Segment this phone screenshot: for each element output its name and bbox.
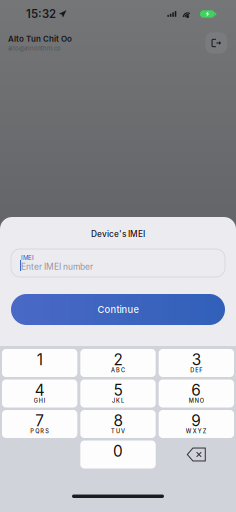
button[interactable]: Continue xyxy=(11,294,225,325)
button[interactable]: 5 xyxy=(80,379,156,407)
staticText: WXYZ xyxy=(186,428,207,435)
staticText: JKL xyxy=(112,397,124,404)
staticText: 6 xyxy=(191,381,201,399)
staticText: alto@innorithm.co xyxy=(8,45,61,52)
staticText: 7 xyxy=(35,411,44,430)
staticText: 9 xyxy=(191,411,201,430)
staticText: GHI xyxy=(34,397,46,404)
staticText: DEF xyxy=(190,367,202,374)
button[interactable]: 1 xyxy=(2,349,77,377)
button[interactable]: 8 xyxy=(80,410,156,438)
button[interactable]: Delete xyxy=(159,440,234,468)
staticText: 2 xyxy=(113,350,122,369)
staticText: 5 xyxy=(113,381,122,399)
button[interactable]: 6 xyxy=(159,379,234,407)
staticText: Alto Tun Chit Oo xyxy=(8,34,72,44)
staticText: 8 xyxy=(113,411,122,430)
staticText: 4 xyxy=(35,381,45,399)
staticText: Continue xyxy=(97,304,138,315)
button[interactable]: 3 xyxy=(159,349,234,377)
button[interactable]: 9 xyxy=(159,410,234,438)
staticText: ABC xyxy=(111,367,125,374)
button[interactable]: 4 xyxy=(2,379,77,407)
staticText: IMEI xyxy=(21,254,34,262)
staticText: 15:32 xyxy=(26,7,56,21)
button[interactable]: 2 xyxy=(80,349,156,377)
button[interactable]: Sign out xyxy=(205,32,227,54)
staticText: PQRS xyxy=(30,428,49,435)
staticText: 3 xyxy=(192,350,201,369)
button[interactable]: 0 xyxy=(80,440,156,468)
staticText: Enter IMEI number xyxy=(21,261,93,272)
button[interactable]: 7 xyxy=(2,410,77,438)
staticText: 1 xyxy=(37,350,43,369)
staticText: Device's IMEI xyxy=(91,229,145,239)
staticText: 0 xyxy=(113,442,123,460)
staticText: TUV xyxy=(111,428,125,435)
staticText: MNO xyxy=(189,397,204,404)
